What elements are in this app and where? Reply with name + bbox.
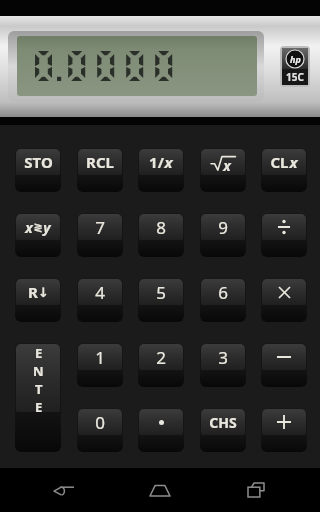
staticText: R — [28, 282, 38, 302]
button[interactable]: Add — [261, 408, 307, 452]
button[interactable]: CHS — [200, 408, 246, 452]
staticText: E — [35, 398, 43, 412]
staticText: CL — [270, 152, 289, 172]
button[interactable]: Roll down — [15, 278, 61, 322]
button[interactable]: 5 — [138, 278, 184, 322]
button[interactable]: 1/ — [138, 148, 184, 192]
staticText: ≷ — [33, 221, 43, 234]
staticText: 3 — [218, 346, 228, 369]
staticText: N — [33, 362, 44, 380]
staticText: 2 — [156, 346, 166, 369]
button[interactable]: Decimal point — [138, 408, 184, 452]
staticText: 4 — [95, 281, 105, 304]
staticText: 15C — [286, 70, 304, 84]
staticText: 7 — [95, 216, 105, 239]
staticText: 9 — [218, 216, 228, 239]
button[interactable]: E — [15, 343, 61, 452]
staticText: E — [35, 344, 43, 362]
button[interactable]: 6 — [200, 278, 246, 322]
button[interactable]: CL — [261, 148, 307, 192]
staticText: x — [289, 152, 298, 172]
button[interactable]: Back — [32, 468, 96, 512]
staticText: T — [35, 380, 43, 398]
button[interactable]: x — [200, 148, 246, 192]
staticText: RCL — [86, 152, 114, 172]
staticText: x — [164, 152, 173, 172]
button[interactable]: 4 — [77, 278, 123, 322]
button[interactable]: Home — [128, 468, 192, 512]
button[interactable]: Multiply — [261, 278, 307, 322]
staticText: CHS — [209, 413, 237, 432]
button[interactable]: 0 — [77, 408, 123, 452]
button[interactable]: 7 — [77, 213, 123, 257]
button[interactable]: 3 — [200, 343, 246, 387]
staticText: 5 — [156, 281, 166, 304]
staticText: 1/ — [149, 152, 164, 172]
staticText: 6 — [218, 281, 228, 304]
button[interactable]: Subtract — [261, 343, 307, 387]
button[interactable]: 2 — [138, 343, 184, 387]
staticText: x — [25, 218, 33, 237]
staticText: x — [223, 156, 231, 175]
staticText: y — [43, 218, 51, 237]
button[interactable]: STO — [15, 148, 61, 192]
staticText: STO — [24, 152, 53, 172]
button[interactable]: 9 — [200, 213, 246, 257]
staticText: 8 — [156, 216, 166, 239]
staticText: ↓ — [38, 285, 49, 300]
button[interactable]: 8 — [138, 213, 184, 257]
staticText: 0 — [95, 411, 105, 434]
button[interactable]: x — [15, 213, 61, 257]
staticText: 1 — [95, 346, 105, 369]
staticText: hp — [290, 53, 301, 65]
button[interactable]: 1 — [77, 343, 123, 387]
button[interactable]: Recent apps — [224, 468, 288, 512]
button[interactable]: Divide — [261, 213, 307, 257]
button[interactable]: RCL — [77, 148, 123, 192]
